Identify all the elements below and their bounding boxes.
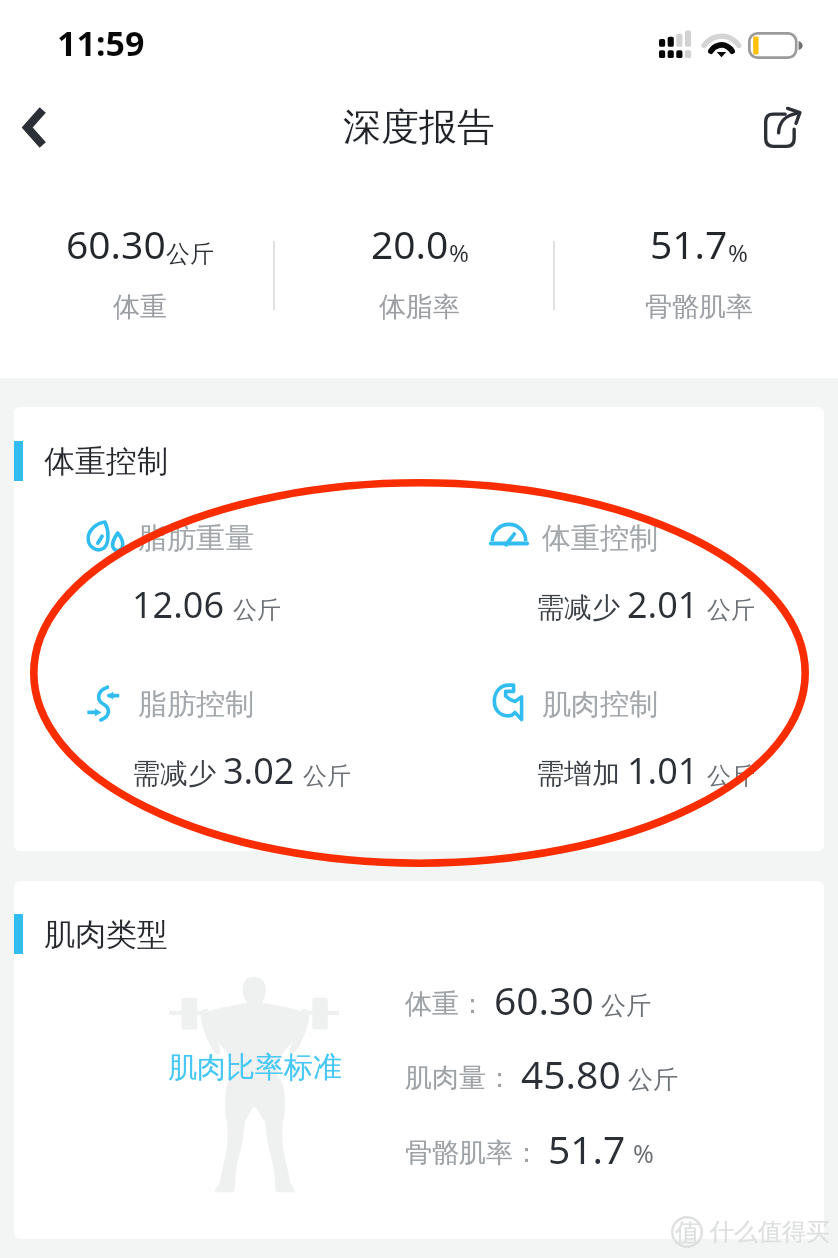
staticText: 肌肉量： [405, 1061, 513, 1095]
staticText: 体脂率 [379, 290, 460, 324]
staticText: 11:59 [57, 20, 145, 66]
staticText: 值 [675, 1217, 700, 1248]
staticText: 体重控制 [44, 442, 168, 481]
staticText: % [449, 236, 469, 269]
staticText: 公斤 [233, 595, 281, 625]
button[interactable]: Share [743, 87, 823, 167]
staticText: 需减少 [536, 590, 620, 625]
staticText: 20.0 [371, 217, 449, 270]
staticText: 体重 [113, 290, 167, 324]
staticText: 脂肪控制 [138, 686, 254, 723]
staticText: 公斤 [707, 595, 755, 625]
staticText: % [728, 236, 748, 269]
staticText: 需增加 [536, 756, 620, 791]
button[interactable]: Back [0, 88, 72, 166]
staticText: 骨骼肌率 [645, 290, 753, 324]
staticText: 2.01 [627, 580, 699, 629]
staticText: 什么值得买 [710, 1217, 830, 1247]
staticText: 肌肉比率标准 [168, 1049, 342, 1086]
staticText: 脂肪重量 [138, 520, 254, 557]
staticText: 1.01 [627, 746, 699, 795]
staticText: 60.30 [494, 973, 594, 1026]
staticText: 51.7 [548, 1122, 626, 1175]
staticText: 骨骼肌率： [405, 1136, 540, 1170]
staticText: % [633, 1136, 654, 1170]
staticText: 体重控制 [542, 520, 658, 557]
staticText: 12.06 [132, 580, 225, 629]
staticText: 公斤 [303, 761, 351, 791]
staticText: 60.30 [66, 217, 166, 270]
staticText: 深度报告 [343, 103, 495, 151]
staticText: 公斤 [601, 990, 651, 1021]
staticText: 45.80 [521, 1047, 621, 1100]
staticText: 公斤 [628, 1064, 678, 1095]
staticText: 3.02 [223, 746, 295, 795]
staticText: 51.7 [650, 217, 728, 270]
staticText: 需减少 [132, 756, 216, 791]
staticText: 公斤 [166, 239, 214, 269]
staticText: 公斤 [707, 761, 755, 791]
staticText: 体重： [405, 987, 486, 1021]
staticText: 肌肉控制 [542, 686, 658, 723]
staticText: 肌肉类型 [44, 915, 168, 954]
